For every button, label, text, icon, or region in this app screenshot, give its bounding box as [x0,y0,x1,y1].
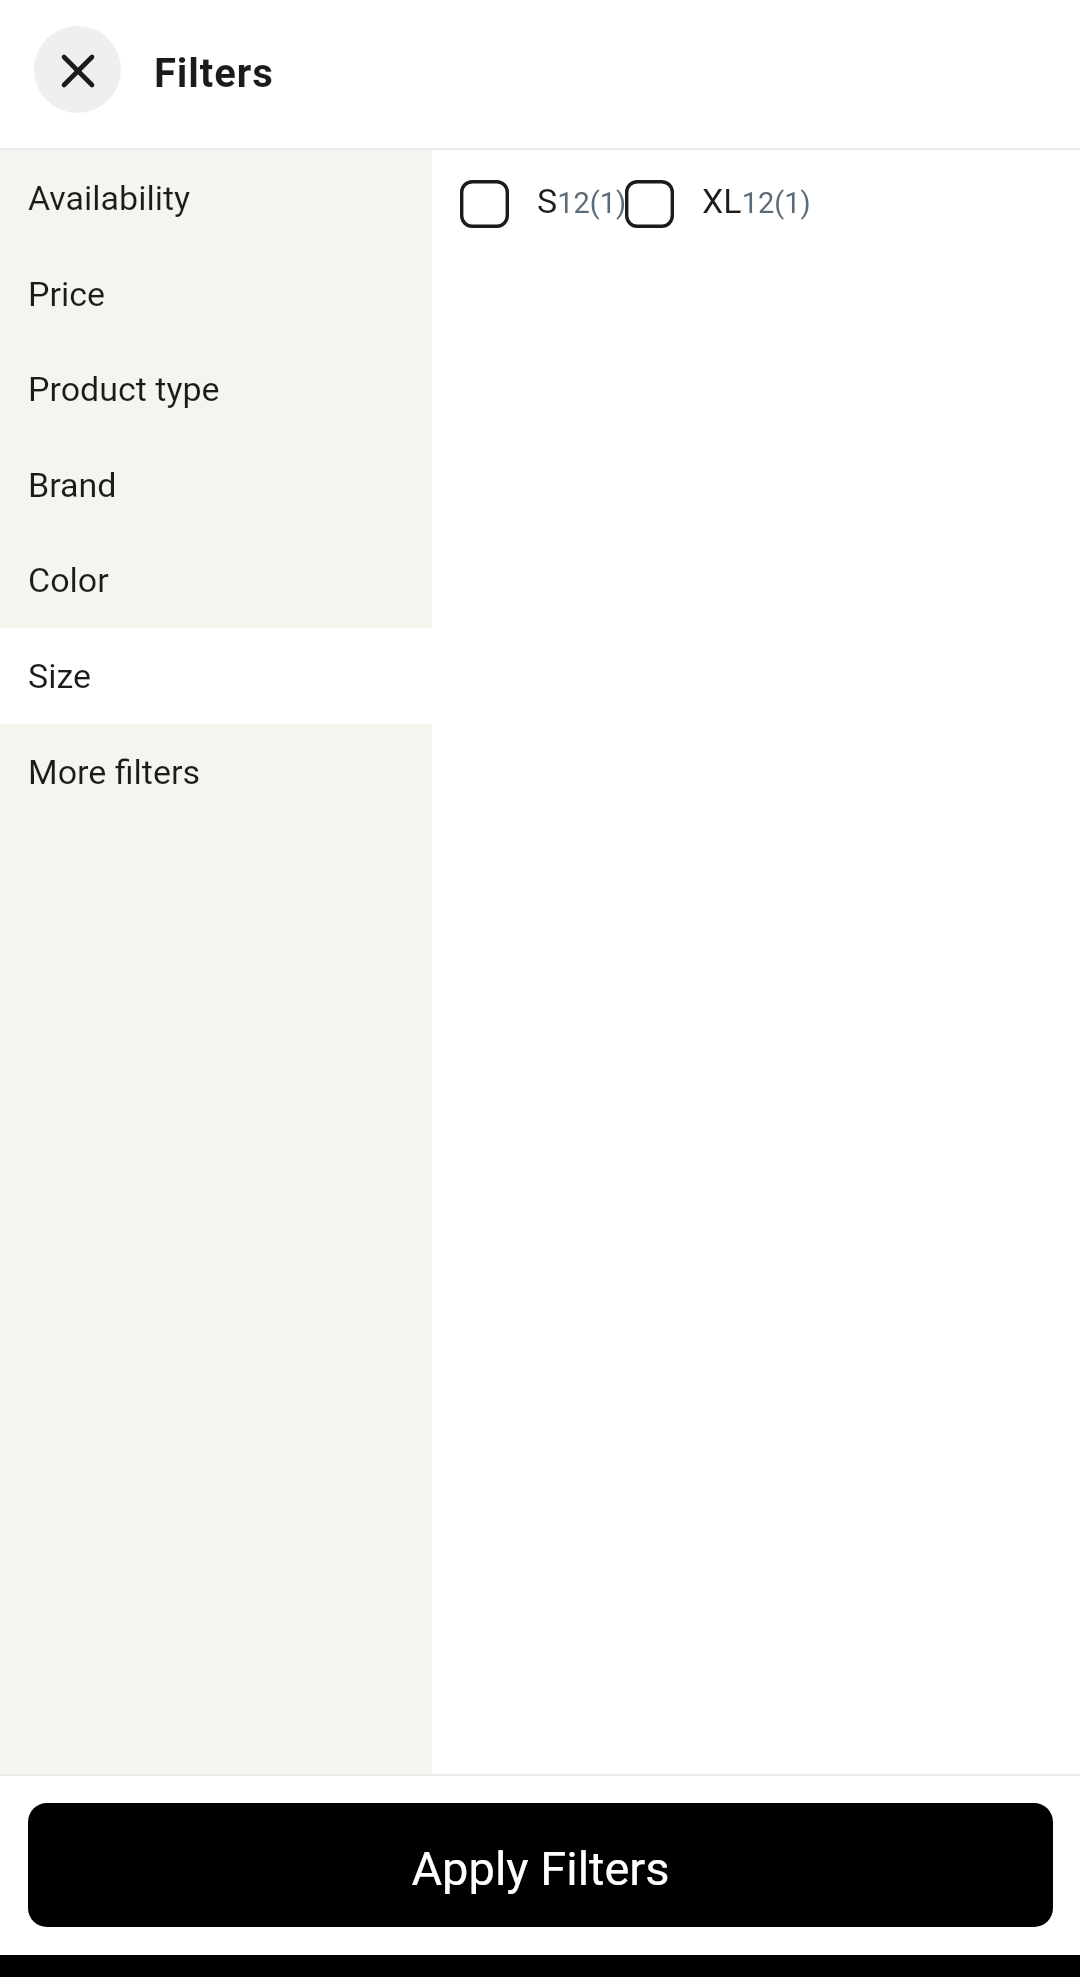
staticText: Color [28,560,109,600]
staticText: Size [28,656,92,696]
button[interactable]: More filters [0,724,432,819]
staticText: XL12(1) [702,181,811,221]
button[interactable]: Availability [0,150,432,246]
staticText: Filters [154,50,274,97]
button[interactable]: Size [0,628,432,724]
staticText: Brand [28,465,117,505]
button[interactable]: XL12(1) [625,180,811,228]
button[interactable]: Color [0,532,432,628]
button[interactable]: Apply Filters [28,1803,1053,1927]
staticText: Price [28,274,106,314]
staticText: More filters [28,752,201,792]
button[interactable]: Close [34,26,121,113]
staticText: Product type [28,369,220,409]
button[interactable]: S12(1) [460,180,627,228]
button[interactable]: Product type [0,341,432,437]
button[interactable]: Brand [0,437,432,532]
staticText: Apply Filters [411,1841,670,1896]
staticText: S12(1) [537,181,627,221]
button[interactable]: Price [0,246,432,341]
staticText: Availability [28,178,191,218]
